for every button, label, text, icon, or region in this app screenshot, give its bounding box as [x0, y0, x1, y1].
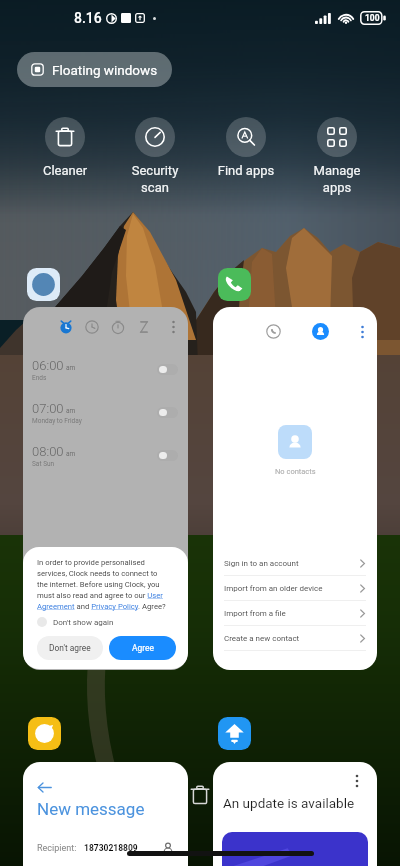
button[interactable]: 06:00	[23, 307, 188, 670]
staticText: Cleaner	[22, 163, 108, 178]
staticText: Find apps	[203, 163, 289, 178]
button[interactable]: Find apps	[203, 117, 289, 178]
button[interactable]: Security scan	[112, 117, 198, 196]
staticText: 06:00	[32, 358, 64, 373]
staticText: New message	[37, 799, 145, 819]
staticText: Sign in to an account	[224, 559, 299, 568]
button[interactable]: Manage apps	[294, 117, 380, 196]
staticText: In order to provide personalised service…	[37, 558, 169, 611]
staticText: Import from an older device	[224, 584, 323, 593]
button[interactable]: More options	[350, 774, 364, 788]
staticText: Import from a file	[224, 609, 286, 618]
button[interactable]: Updater	[218, 717, 251, 750]
staticText: 100	[365, 13, 380, 23]
staticText: 18730218809	[84, 843, 138, 853]
staticText: An update is available	[223, 795, 355, 811]
button[interactable]: Phone	[218, 268, 251, 301]
staticText: Don't show again	[53, 618, 114, 627]
button[interactable]: Back	[37, 780, 52, 795]
staticText: Recipient:	[37, 843, 77, 854]
button[interactable]: Cleaner	[22, 117, 108, 178]
staticText: 07:00	[32, 401, 64, 416]
button[interactable]: Sign in to an account	[213, 551, 377, 575]
staticText: Agree	[132, 643, 154, 653]
button[interactable]: Agree	[109, 636, 176, 660]
staticText: Don't agree	[49, 643, 91, 653]
button[interactable]: Floating windows	[17, 52, 172, 87]
button[interactable]: Create a new contact	[213, 626, 377, 650]
staticText: Manage apps	[294, 163, 380, 196]
staticText: No contacts	[275, 467, 316, 476]
staticText: am	[66, 407, 76, 415]
staticText: Security scan	[112, 163, 198, 196]
staticText: 08:00	[32, 444, 64, 459]
staticText: am	[66, 450, 76, 458]
staticText: Floating windows	[52, 62, 158, 78]
staticText: Monday to Friday	[32, 417, 82, 425]
button[interactable]: Don't show again	[37, 617, 114, 627]
button[interactable]: Don't agree	[37, 636, 103, 660]
button[interactable]: Import from an older device	[213, 576, 377, 600]
staticText: Create a new contact	[224, 634, 300, 643]
staticText: Sat Sun	[32, 460, 55, 468]
button[interactable]: Messages	[28, 717, 61, 750]
button[interactable]: Import from a file	[213, 601, 377, 625]
staticText: 8.16	[74, 10, 102, 26]
button[interactable]: No contacts	[213, 307, 377, 670]
staticText: Ends	[32, 374, 47, 382]
staticText: am	[66, 364, 76, 372]
button[interactable]: Clock	[27, 268, 60, 301]
button[interactable]: Back	[23, 762, 188, 866]
button[interactable]: More options	[213, 762, 377, 866]
button[interactable]: Clear all	[189, 781, 210, 809]
